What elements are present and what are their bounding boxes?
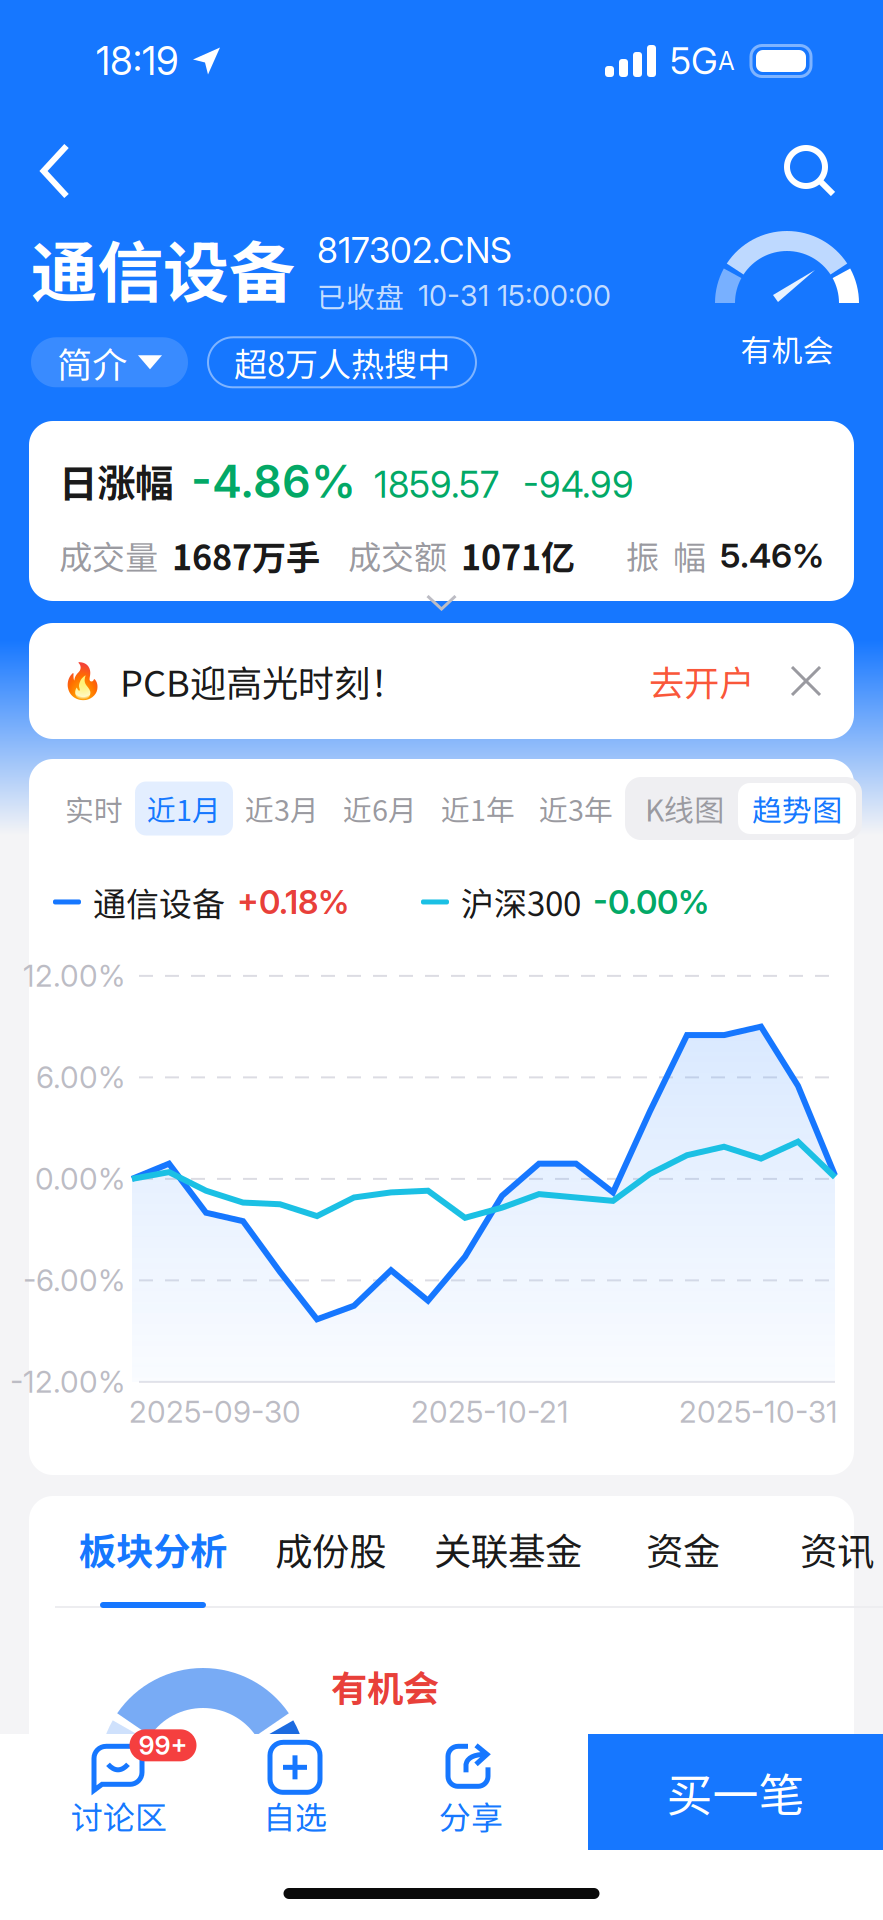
staticText: PCB迎高光时刻！ [120, 655, 406, 707]
button[interactable]: 板块分析 [55, 1496, 251, 1608]
staticText: +0.18% [237, 882, 349, 922]
staticText: 成交额 [348, 531, 447, 579]
staticText: 去开户 [649, 655, 754, 706]
staticText: 近6月 [343, 788, 417, 829]
staticText: 超8万人热搜中 [234, 338, 450, 386]
staticText: 日涨幅 [59, 453, 173, 509]
staticText: 2025-10-31 [679, 1394, 838, 1430]
staticText: 实时 [65, 788, 123, 829]
button[interactable]: 近1月 [135, 781, 233, 835]
staticText: 99+ [138, 1730, 187, 1761]
button[interactable]: 超8万人热搜中 [208, 337, 476, 387]
staticText: 简介 [57, 337, 127, 388]
staticText: -94.99 [523, 463, 634, 507]
staticText: 10-31 15:00:00 [418, 278, 611, 313]
button[interactable]: 自选 [207, 1734, 383, 1850]
staticText: 近1月 [147, 788, 221, 829]
button[interactable]: 近6月 [331, 781, 429, 835]
staticText: A [718, 46, 735, 76]
button[interactable]: 实时 [53, 781, 135, 835]
button[interactable]: 去开户 [649, 639, 754, 722]
staticText: 有机会 [331, 1660, 439, 1712]
staticText: 0.00% [35, 1161, 125, 1197]
staticText: -4.86% [191, 454, 356, 509]
button[interactable]: 成份股 [251, 1496, 410, 1608]
staticText: 6.00% [36, 1059, 125, 1095]
staticText: 近3月 [245, 788, 319, 829]
staticText: 通信设备 [93, 878, 225, 926]
staticText: 1687万手 [172, 531, 320, 580]
button[interactable]: 趋势图 [738, 783, 856, 834]
button[interactable]: 近1年 [429, 781, 527, 835]
staticText: 自选 [263, 1792, 327, 1839]
button[interactable]: 简介 [31, 337, 188, 387]
button[interactable]: Back [15, 131, 95, 211]
staticText: 讨论区 [71, 1792, 167, 1839]
staticText: 817302.CNS [317, 229, 512, 272]
staticText: 近1年 [441, 788, 515, 829]
staticText: 12.00% [23, 958, 125, 994]
staticText: 18:19 [96, 38, 179, 84]
button[interactable]: 分享 [383, 1734, 559, 1850]
staticText: 趋势图 [752, 787, 842, 830]
button[interactable]: Close [754, 649, 822, 713]
staticText: 有机会 [740, 326, 833, 371]
staticText: -6.00% [23, 1262, 125, 1298]
button[interactable]: 99+ [31, 1734, 207, 1850]
staticText: 多家机构与平台专家对板块后市表现看 [331, 1736, 875, 1783]
button[interactable]: 资金 [606, 1496, 760, 1608]
staticText: 资金 [646, 1522, 720, 1576]
staticText: 板块分析 [79, 1522, 227, 1576]
staticText: 分享 [439, 1792, 503, 1839]
button[interactable]: K线图 [631, 783, 738, 834]
staticText: 成交量 [59, 531, 158, 579]
button[interactable]: 资讯 [760, 1496, 883, 1608]
button[interactable]: 近3月 [233, 781, 331, 835]
staticText: 买一笔 [666, 1759, 804, 1825]
staticText: 5G [670, 39, 718, 83]
staticText: -0.00% [593, 882, 709, 922]
button[interactable]: 买一笔 [588, 1734, 883, 1850]
button[interactable]: 近3年 [527, 781, 625, 835]
staticText: 2025-09-30 [129, 1394, 301, 1430]
button[interactable]: Search [770, 131, 850, 211]
staticText: 沪深300 [461, 878, 581, 926]
staticText: 🔥 [61, 661, 104, 701]
staticText: K线图 [645, 787, 724, 830]
staticText: 5.46% [720, 535, 824, 576]
staticText: 1071亿 [461, 531, 575, 580]
staticText: 通信设备 [31, 220, 295, 316]
staticText: 近3年 [539, 788, 613, 829]
staticText: 关联基金 [434, 1522, 582, 1576]
staticText: 2025-10-21 [411, 1394, 569, 1430]
staticText: 振 幅 [626, 531, 706, 579]
staticText: -12.00% [10, 1364, 125, 1400]
button[interactable]: 关联基金 [410, 1496, 606, 1608]
staticText: 已收盘 [317, 275, 404, 316]
staticText: 资讯 [800, 1522, 874, 1576]
staticText: 1859.57 [374, 463, 499, 507]
staticText: 成份股 [275, 1522, 386, 1576]
